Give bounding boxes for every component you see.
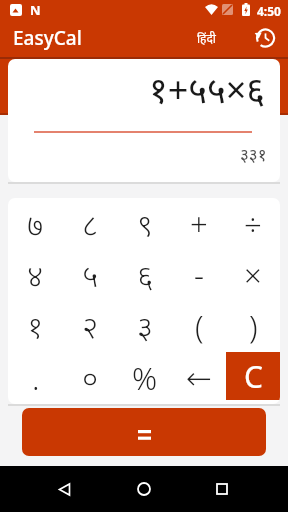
button[interactable]: ७ xyxy=(8,198,63,249)
button[interactable]: ६ xyxy=(118,249,172,300)
button[interactable] xyxy=(22,408,266,456)
staticText: ९ xyxy=(137,203,154,245)
staticText: ४ xyxy=(27,254,44,296)
staticText: ८ xyxy=(82,203,99,245)
staticText: ० xyxy=(82,357,99,399)
button[interactable]: + xyxy=(172,198,226,249)
staticText: ) xyxy=(249,305,258,347)
button[interactable] xyxy=(199,466,245,512)
button[interactable]: ५ xyxy=(63,249,118,300)
button[interactable]: ३ xyxy=(118,300,172,352)
button[interactable]: ० xyxy=(63,352,118,404)
staticText: N xyxy=(30,1,41,19)
staticText: - xyxy=(194,254,204,296)
button[interactable]: ← xyxy=(172,352,226,404)
button[interactable]: % xyxy=(118,352,172,404)
staticText: % xyxy=(132,357,158,399)
button[interactable]: २ xyxy=(63,300,118,352)
staticText: ← xyxy=(186,360,212,396)
button[interactable]: ९ xyxy=(118,198,172,249)
button[interactable]: - xyxy=(172,249,226,300)
staticText: 4:50 xyxy=(257,3,281,19)
staticText: × xyxy=(244,254,262,296)
button[interactable]: ८ xyxy=(63,198,118,249)
button[interactable]: . xyxy=(8,352,63,404)
staticText: १ xyxy=(27,305,44,347)
button[interactable]: C xyxy=(226,352,280,400)
staticText: ÷ xyxy=(244,203,262,245)
staticText: ३३१ xyxy=(240,143,267,166)
button[interactable]: ( xyxy=(172,300,226,352)
button[interactable]: ) xyxy=(226,300,280,352)
button[interactable]: ÷ xyxy=(226,198,280,249)
button[interactable] xyxy=(121,466,167,512)
staticText: १+५५×६ xyxy=(149,65,266,114)
staticText: . xyxy=(32,357,40,399)
button[interactable] xyxy=(254,27,276,49)
button[interactable]: हिंदी xyxy=(197,30,216,46)
staticText: ५ xyxy=(82,254,99,296)
staticText: ७ xyxy=(27,203,44,245)
staticText: + xyxy=(190,203,208,245)
button[interactable] xyxy=(41,466,87,512)
staticText: C xyxy=(244,356,263,397)
staticText: EasyCal xyxy=(13,25,82,51)
button[interactable]: × xyxy=(226,249,280,300)
staticText: २ xyxy=(82,305,99,347)
staticText: ६ xyxy=(137,254,154,296)
staticText: ( xyxy=(195,305,204,347)
staticText: हिंदी xyxy=(197,30,216,46)
staticText: ३ xyxy=(137,305,154,347)
button[interactable]: ४ xyxy=(8,249,63,300)
button[interactable]: १ xyxy=(8,300,63,352)
